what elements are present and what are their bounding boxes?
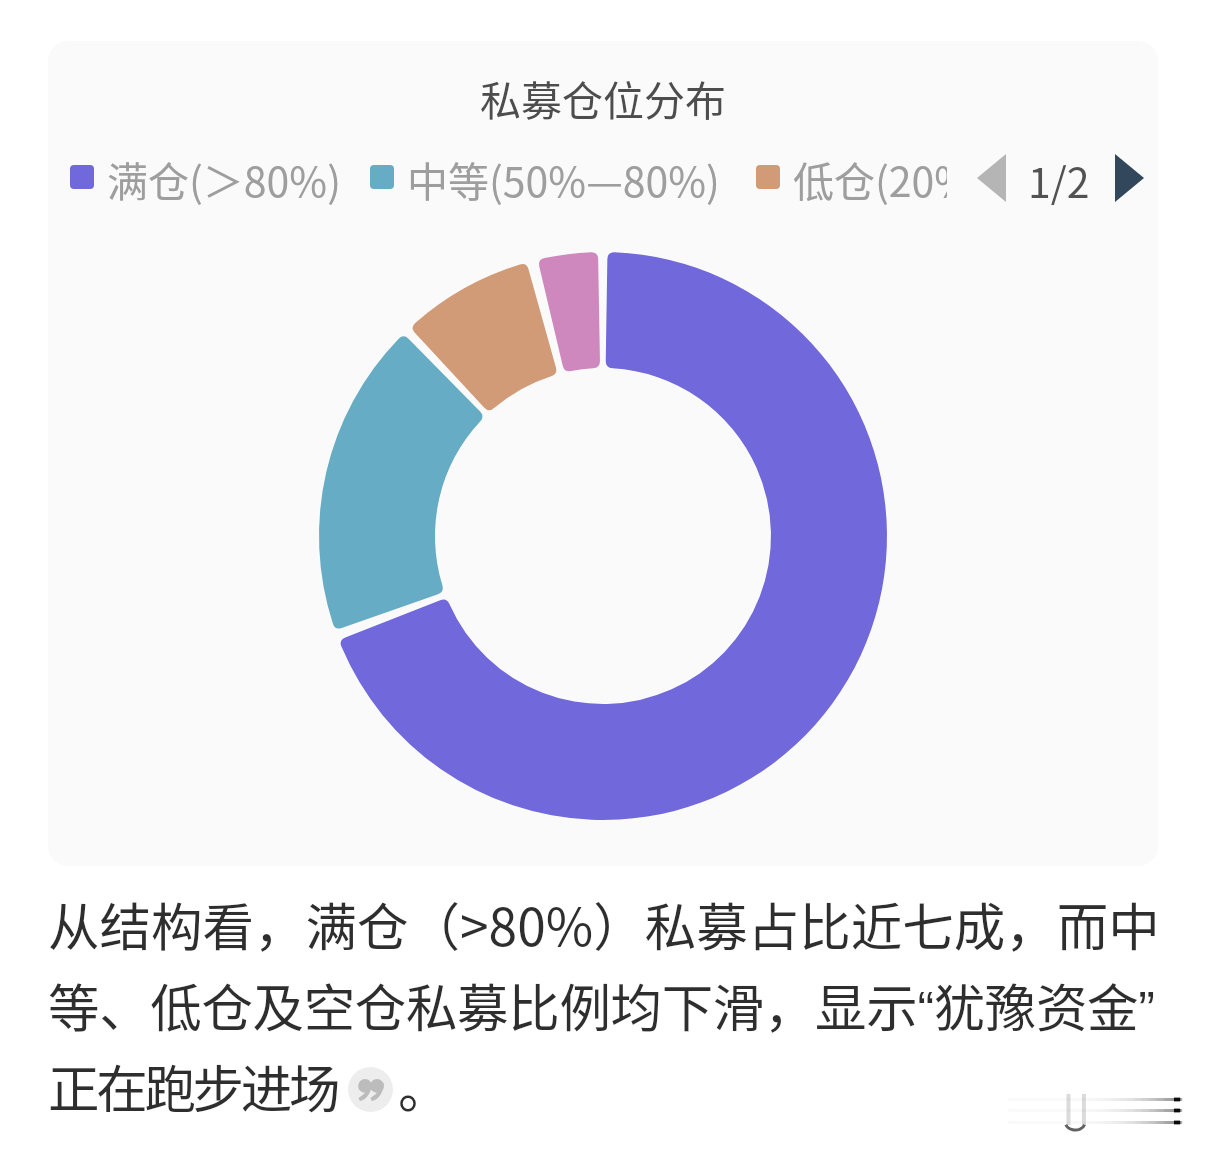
- staticText: 正在跑步进场: [48, 1048, 338, 1123]
- button[interactable]: Quote source: [348, 1067, 393, 1112]
- staticText: 中等(50%—80%): [407, 149, 720, 205]
- staticText: 。: [398, 1048, 450, 1123]
- button[interactable]: Previous page: [963, 150, 1019, 206]
- staticText: 低仓(20%—50%): [793, 149, 947, 205]
- staticText: 1/2: [1028, 150, 1090, 206]
- staticText: 私募仓位分布: [48, 68, 1158, 127]
- button[interactable]: 低仓(20%—50%): [756, 149, 947, 205]
- button[interactable]: 中等(50%—80%): [370, 149, 720, 205]
- staticText: 满仓(＞80%): [107, 149, 341, 205]
- button[interactable]: Next page: [1101, 150, 1157, 206]
- staticText: 从结构看，满仓（>80%）私募占比近七成，而中: [48, 886, 1160, 961]
- button[interactable]: 满仓(＞80%): [70, 149, 341, 205]
- staticText: 等、低仓及空仓私募比例均下滑，显示“犹豫资金”: [48, 967, 1155, 1042]
